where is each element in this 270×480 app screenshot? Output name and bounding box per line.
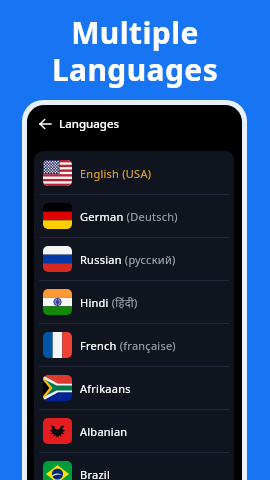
button[interactable]: English (USA): [34, 152, 234, 194]
staticText: German (Deutsch): [80, 209, 178, 224]
staticText: French (française): [80, 338, 176, 353]
button[interactable]: French (française): [34, 324, 234, 366]
button[interactable]: German (Deutsch): [34, 195, 234, 237]
staticText: Brazil: [80, 467, 110, 480]
staticText: Russian (русский): [80, 252, 176, 267]
button[interactable]: Albanian: [34, 410, 234, 452]
button[interactable]: Hindi (हिंदी): [34, 281, 234, 323]
staticText: Afrikaans: [80, 381, 131, 396]
staticText: Hindi (हिंदी): [80, 295, 138, 310]
button[interactable]: Afrikaans: [34, 367, 234, 409]
staticText: Albanian: [80, 424, 128, 439]
button[interactable]: Back: [34, 113, 56, 135]
staticText: English (USA): [80, 166, 152, 181]
button[interactable]: Russian (русский): [34, 238, 234, 280]
staticText: Multiple Languages: [0, 12, 270, 90]
button[interactable]: Brazil: [34, 453, 234, 480]
staticText: Languages: [59, 116, 120, 132]
